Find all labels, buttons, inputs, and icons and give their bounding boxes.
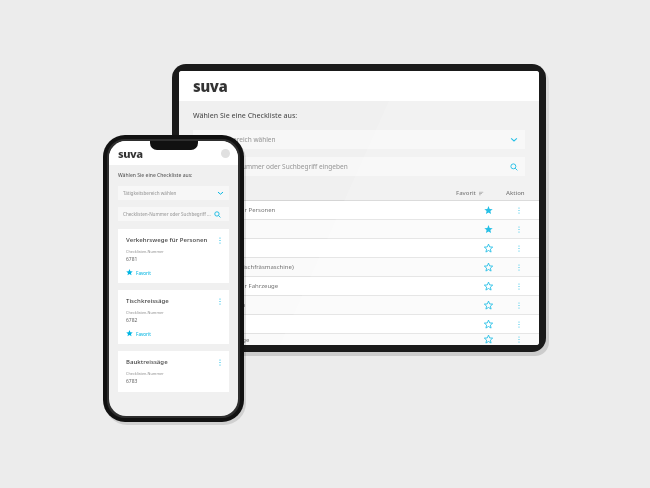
staticText: Favorit [136, 331, 151, 337]
button[interactable]: Aktionen [219, 298, 221, 305]
button[interactable]: Aktionen [219, 237, 221, 244]
staticText: Bodenhülsenwege [197, 336, 250, 344]
button[interactable]: Checklisten-Nummer oder Suchbegriff eing… [193, 157, 525, 176]
staticText: Tischkreissäge [197, 225, 239, 233]
staticText: suva [118, 146, 143, 161]
button[interactable]: Verkehrswege für Personen [179, 201, 539, 219]
staticText: Aktion [506, 189, 525, 197]
button[interactable]: Grünschnitzelsilo [179, 296, 539, 314]
button[interactable]: Favorit [126, 330, 151, 337]
staticText: Checklisten-Nummer [126, 310, 164, 315]
staticText: Favorit [136, 270, 151, 276]
staticText: 6781 [126, 256, 138, 263]
staticText: 6783 [126, 378, 138, 385]
staticText: suva [193, 76, 228, 96]
button[interactable]: Checklisten-Nummer oder Suchbegriff ... [118, 207, 229, 221]
staticText: Kehlmaschine (Tischfräsmaschine) [197, 263, 294, 271]
button[interactable]: Bausäge [179, 239, 539, 257]
staticText: Verkehrswege für Personen [126, 236, 215, 244]
button[interactable]: Favorit [126, 269, 151, 276]
staticText: Checklisten-Nummer [126, 371, 164, 376]
staticText: Checklisten-Nummer oder Suchbegriff eing… [200, 162, 348, 171]
staticText: Holzspänesilo [197, 320, 237, 328]
staticText: Tischkreissäge [126, 297, 215, 305]
button[interactable]: Tätigkeitsbereich wählen [118, 186, 229, 200]
button[interactable]: Verkehrswege für Personen [118, 229, 229, 283]
staticText: Tätigkeitsbereich wählen [123, 190, 177, 196]
staticText: Verkehrswege für Personen [197, 206, 276, 214]
staticText: Bauktreissäge [126, 358, 215, 366]
button[interactable]: Bodenhülsenwege [179, 334, 539, 345]
button[interactable]: Tätigkeitsbereich wählen [193, 130, 525, 149]
staticText: Grünschnitzelsilo [197, 301, 246, 309]
staticText: Checklisten-Nummer oder Suchbegriff ... [123, 211, 211, 217]
staticText: Favorit [456, 189, 476, 197]
button[interactable]: Tischkreissäge [118, 290, 229, 344]
staticText: Checklisten-Nummer [126, 249, 164, 254]
button[interactable]: Profil [221, 149, 230, 158]
staticText: Wählen Sie eine Checkliste aus: [193, 111, 298, 121]
button[interactable]: Verkehrswege für Fahrzeuge [179, 277, 539, 295]
button[interactable]: Holzspänesilo [179, 315, 539, 333]
button[interactable]: Bauktreissäge [118, 351, 229, 392]
staticText: Verkehrswege für Fahrzeuge [197, 282, 279, 290]
button[interactable]: Aktionen [219, 359, 221, 366]
button[interactable]: Tischkreissäge [179, 220, 539, 238]
staticText: 6782 [126, 317, 138, 324]
staticText: Wählen Sie eine Checkliste aus: [118, 172, 193, 179]
button[interactable]: Kehlmaschine (Tischfräsmaschine) [179, 258, 539, 276]
staticText: Tätigkeitsbereich wählen [200, 135, 276, 144]
